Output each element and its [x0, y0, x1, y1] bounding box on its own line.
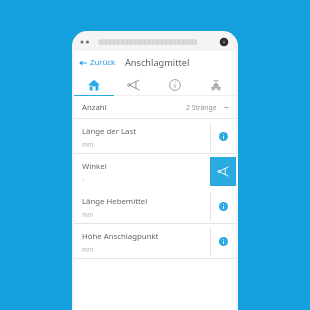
staticText: mm: [82, 140, 94, 148]
button[interactable]: Winkel: [74, 154, 210, 189]
staticText: 2 Stränge: [186, 103, 217, 112]
staticText: Länge Hebemittel: [82, 196, 148, 207]
button[interactable]: Länge Hebemittel: [74, 189, 210, 224]
staticText: mm: [82, 210, 94, 218]
button[interactable]: Info: [210, 192, 236, 221]
button[interactable]: Winkel bearbeiten: [210, 157, 236, 186]
staticText: Höhe Anschlagpunkt: [82, 231, 159, 242]
button[interactable]: Anzahl: [74, 96, 236, 119]
staticText: Zurück: [90, 57, 116, 68]
button[interactable]: Anschlagmittel: [114, 74, 154, 95]
button[interactable]: Home: [74, 74, 114, 95]
button[interactable]: Info: [154, 74, 195, 95]
staticText: Winkel: [82, 161, 107, 172]
staticText: Länge der Last: [82, 126, 136, 137]
staticText: -: [82, 175, 84, 183]
button[interactable]: Einstellungen: [195, 74, 236, 95]
button[interactable]: Info: [210, 227, 236, 256]
staticText: Anschlagmittel: [125, 56, 190, 69]
staticText: Anzahl: [82, 102, 107, 113]
button[interactable]: Höhe Anschlagpunkt: [74, 224, 210, 259]
staticText: mm: [82, 245, 94, 253]
button[interactable]: Länge der Last: [74, 119, 210, 154]
button[interactable]: Info: [210, 122, 236, 151]
button[interactable]: Zurück: [74, 53, 121, 72]
